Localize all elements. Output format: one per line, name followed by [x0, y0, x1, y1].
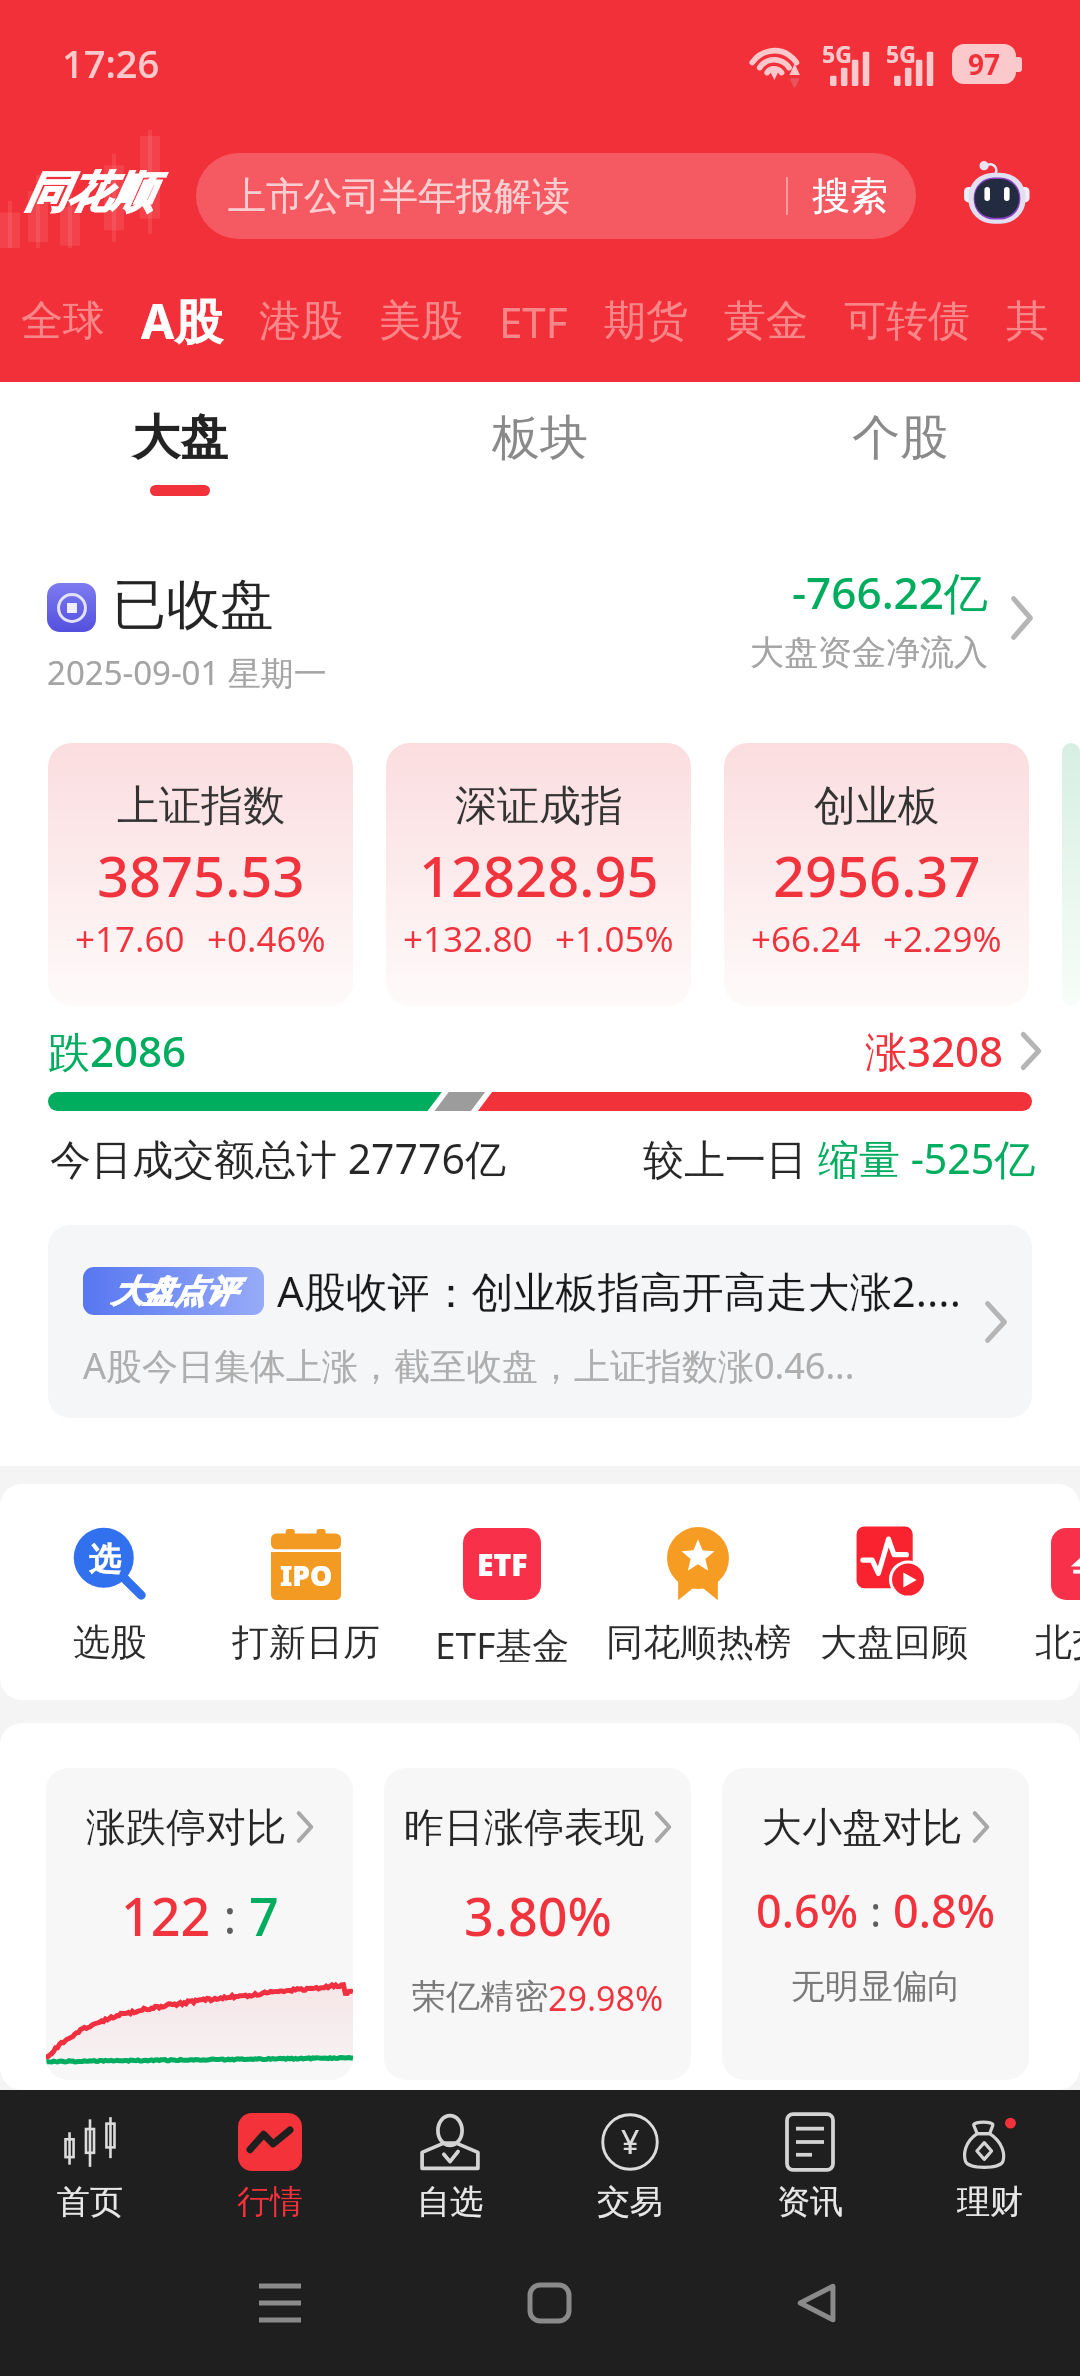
staticText: 首页: [57, 2181, 123, 2223]
button[interactable]: 涨跌停对比: [46, 1768, 353, 2080]
staticText: +1.05%: [555, 915, 674, 963]
staticText: 5G: [886, 38, 916, 69]
staticText: ETF: [477, 1544, 528, 1585]
button[interactable]: 板块: [360, 382, 720, 522]
staticText: 同花顺热榜: [606, 1619, 791, 1666]
staticText: +132.80: [403, 915, 533, 963]
staticText: 同花顺: [24, 166, 153, 220]
staticText: 创业板: [814, 780, 940, 833]
staticText: 5G: [822, 38, 852, 69]
button[interactable]: AI助手: [957, 156, 1037, 232]
staticText: 今日成交额总计 27776亿: [50, 1130, 506, 1186]
staticText: 选: [89, 1539, 121, 1579]
staticText: 较上一日: [643, 1130, 818, 1186]
button[interactable]: 行情: [180, 2090, 360, 2230]
staticText: IPO: [280, 1556, 333, 1594]
staticText: +0.46%: [207, 915, 326, 963]
staticText: 29.98%: [548, 1975, 664, 2021]
staticText: 12828.95: [419, 837, 659, 913]
staticText: 0.8%: [893, 1880, 996, 1941]
staticText: +66.24: [751, 915, 861, 963]
staticText: 荣亿精密: [412, 1975, 548, 2018]
button[interactable]: 首页: [0, 2090, 180, 2230]
staticText: 上市公司半年报解读: [228, 172, 570, 220]
staticText: 无明显偏向: [791, 1965, 961, 2008]
button[interactable]: 大小盘对比: [722, 1768, 1029, 2080]
staticText: 港股: [259, 295, 343, 348]
staticText: 板块: [492, 408, 588, 468]
button[interactable]: 自选: [360, 2090, 540, 2230]
staticText: 122: [121, 1880, 211, 1951]
button[interactable]: 黄金: [706, 285, 826, 358]
button[interactable]: Home: [509, 2263, 589, 2343]
staticText: 自选: [417, 2181, 483, 2223]
button[interactable]: ETF: [404, 1525, 600, 1670]
button[interactable]: 创业板: [724, 743, 1029, 1006]
staticText: 缩量 -525亿: [818, 1130, 1036, 1186]
staticText: 上证指数: [117, 780, 285, 833]
staticText: :: [859, 1882, 893, 1939]
button[interactable]: 理财: [900, 2090, 1080, 2230]
button[interactable]: 可转债: [826, 285, 988, 358]
staticText: 2025-09-01 星期一: [47, 650, 327, 695]
button[interactable]: 上证指数: [48, 743, 353, 1006]
staticText: A股今日集体上涨，截至收盘，上证指数涨0.46...: [83, 1341, 933, 1390]
staticText: 黄金: [724, 295, 808, 348]
staticText: 可转债: [844, 295, 970, 348]
staticText: 期货: [604, 295, 688, 348]
button[interactable]: 大盘点评: [48, 1225, 1032, 1418]
staticText: 涨3208: [865, 1022, 1004, 1079]
staticText: 理财: [957, 2181, 1023, 2223]
button[interactable]: 北交所: [992, 1525, 1080, 1666]
staticText: 7: [249, 1880, 279, 1951]
button[interactable]: 选: [12, 1525, 208, 1666]
staticText: 搜索: [812, 172, 888, 220]
staticText: 17:26: [62, 37, 160, 89]
staticText: 选股: [73, 1619, 147, 1666]
button[interactable]: 大盘: [0, 382, 360, 522]
button[interactable]: ¥: [540, 2090, 720, 2230]
staticText: 大小盘对比: [762, 1802, 962, 1852]
button[interactable]: 其他: [988, 285, 1080, 358]
staticText: 美股: [379, 295, 463, 348]
button[interactable]: 全球: [3, 285, 123, 358]
button[interactable]: 个股: [720, 382, 1080, 522]
staticText: 3.80%: [464, 1880, 612, 1951]
staticText: A股收评：创业板指高开高走大涨2....: [277, 1262, 977, 1319]
staticText: 全球: [21, 295, 105, 348]
staticText: 昨日涨停表现: [404, 1802, 644, 1852]
staticText: 2956.37: [773, 837, 981, 913]
button[interactable]: A股: [123, 278, 241, 364]
button[interactable]: 大盘回顾: [796, 1525, 992, 1666]
staticText: 行情: [237, 2181, 303, 2223]
button[interactable]: 同花顺热榜: [600, 1525, 796, 1666]
staticText: 个股: [852, 408, 948, 468]
staticText: 大盘资金净流入: [750, 631, 988, 674]
button[interactable]: 上市公司半年报解读: [196, 153, 916, 239]
button[interactable]: IPO: [208, 1525, 404, 1666]
staticText: 其他: [1006, 295, 1062, 348]
staticText: 大盘回顾: [820, 1619, 968, 1666]
staticText: :: [211, 1883, 249, 1948]
button[interactable]: [1062, 743, 1080, 1006]
staticText: 97: [968, 45, 1001, 83]
staticText: 已收盘: [112, 571, 274, 639]
button[interactable]: 深证成指: [386, 743, 691, 1006]
staticText: 打新日历: [232, 1619, 380, 1666]
staticText: +2.29%: [883, 915, 1002, 963]
button[interactable]: 美股: [361, 285, 481, 358]
button[interactable]: 港股: [241, 285, 361, 358]
button[interactable]: Back: [777, 2263, 857, 2343]
button[interactable]: ETF: [481, 283, 586, 360]
staticText: -766.22亿: [792, 562, 988, 622]
staticText: 3875.53: [97, 837, 305, 913]
staticText: 0.6%: [756, 1880, 859, 1941]
button[interactable]: 期货: [586, 285, 706, 358]
staticText: ETF基金: [435, 1619, 570, 1670]
staticText: 资讯: [777, 2181, 843, 2223]
staticText: 涨跌停对比: [86, 1802, 286, 1852]
staticText: 大盘: [132, 408, 228, 468]
button[interactable]: Recents: [240, 2263, 320, 2343]
button[interactable]: 昨日涨停表现: [384, 1768, 691, 2080]
button[interactable]: 资讯: [720, 2090, 900, 2230]
